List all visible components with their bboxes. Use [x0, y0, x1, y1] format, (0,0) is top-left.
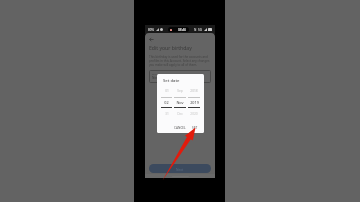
staticText: Set date — [163, 78, 180, 84]
staticText: 02 — [164, 100, 169, 105]
staticText: CANCEL — [174, 126, 186, 130]
staticText: Dec — [177, 112, 183, 116]
staticText: Birthday — [152, 72, 162, 75]
staticText: 01 — [165, 89, 169, 93]
button[interactable]: Next — [149, 164, 211, 173]
staticText: 2020 — [190, 112, 198, 116]
button[interactable]: Birthday — [149, 70, 211, 83]
staticText: Next — [176, 167, 184, 171]
staticText: Nov — [176, 100, 184, 105]
staticText: This birthday is used for the accounts a… — [149, 55, 210, 67]
staticText: SET — [192, 126, 198, 130]
button[interactable]: CANCEL — [173, 125, 187, 131]
staticText: 80% — [148, 28, 155, 32]
staticText: 08:46 — [178, 28, 187, 32]
staticText: Edit your birthday — [149, 45, 192, 52]
staticText: Sep — [177, 89, 183, 93]
button[interactable]: Back — [149, 37, 154, 42]
staticText: 31 — [165, 112, 169, 116]
staticText: 5G — [198, 28, 203, 32]
button[interactable]: SET — [191, 125, 199, 131]
staticText: Nov 2, 2019 — [152, 76, 170, 80]
staticText: N — [194, 28, 197, 32]
staticText: 2018 — [190, 89, 198, 93]
staticText: 2019 — [190, 100, 199, 105]
